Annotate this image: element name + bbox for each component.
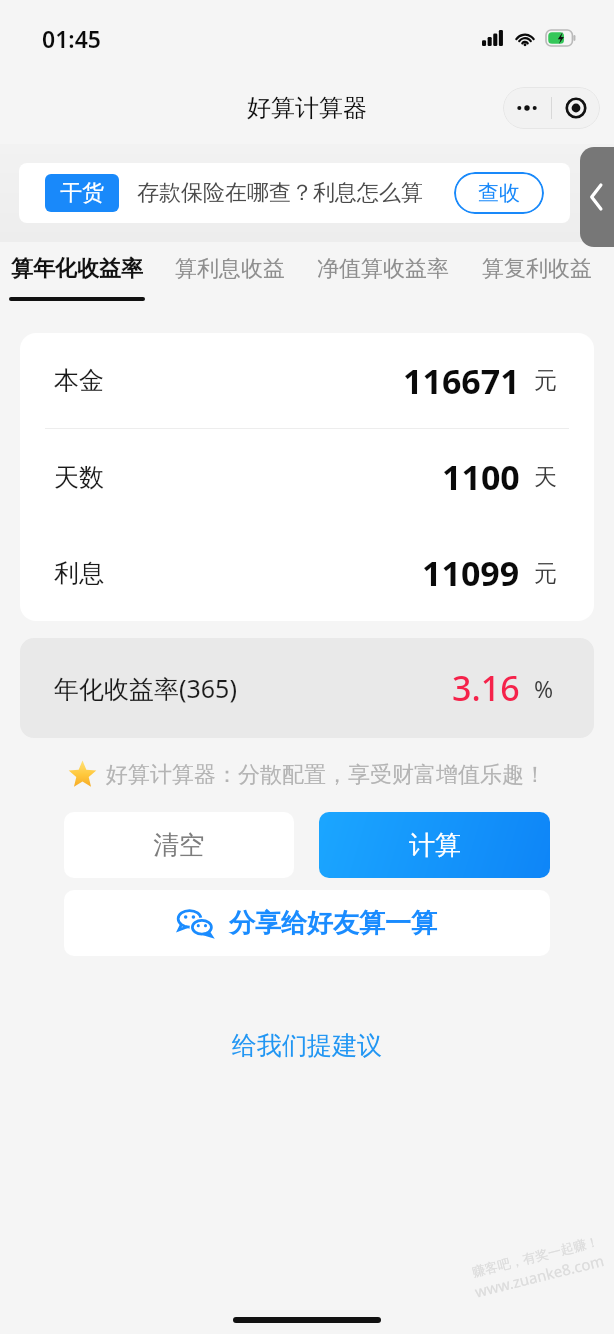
staticText: 给我们提建议 <box>232 1030 382 1061</box>
staticText: 好算计算器：分散配置，享受财富增值乐趣！ <box>106 761 546 789</box>
staticText: 本金 <box>54 365 104 396</box>
staticText: % <box>534 673 554 704</box>
staticText: 元 <box>534 366 557 395</box>
button[interactable]: More <box>503 87 551 129</box>
button[interactable]: 利息 <box>20 525 594 621</box>
staticText: 天 <box>534 463 557 492</box>
button[interactable]: 分享给好友算一算 <box>64 890 550 956</box>
staticText: 赚客吧，有奖一起赚！ <box>470 1233 600 1280</box>
button[interactable]: 本金 <box>20 333 594 428</box>
staticText: 01:45 <box>42 23 101 54</box>
button[interactable]: 算复利收益 <box>460 242 614 317</box>
button[interactable]: 算利息收益 <box>153 242 306 317</box>
button[interactable]: 算年化收益率 <box>0 242 153 317</box>
staticText: 分享给好友算一算 <box>229 907 437 940</box>
staticText: 算复利收益 <box>482 255 592 283</box>
staticText: 净值算收益率 <box>317 255 449 283</box>
button[interactable]: 天数 <box>20 429 594 525</box>
staticText: 存款保险在哪查？利息怎么算 <box>137 179 454 207</box>
button[interactable]: 清空 <box>64 812 294 878</box>
staticText: 116671 <box>403 358 520 404</box>
staticText: 好算计算器 <box>247 93 367 123</box>
staticText: 查收 <box>478 180 520 206</box>
button[interactable]: 年化收益率(365) <box>20 638 594 738</box>
button[interactable]: 计算 <box>319 812 550 878</box>
staticText: 元 <box>534 559 557 588</box>
staticText: 清空 <box>153 829 205 862</box>
button[interactable]: 查收 <box>454 172 544 214</box>
staticText: www.zuanke8.com <box>473 1250 607 1301</box>
staticText: 干货 <box>60 179 104 207</box>
staticText: 11099 <box>422 550 520 596</box>
button[interactable]: Close <box>552 87 600 129</box>
button[interactable]: Open drawer <box>580 147 614 247</box>
staticText: 算利息收益 <box>175 255 285 283</box>
staticText: 3.16 <box>452 665 520 711</box>
staticText: 年化收益率(365) <box>54 671 237 705</box>
staticText: 天数 <box>54 462 104 493</box>
staticText: 计算 <box>409 829 461 862</box>
button[interactable]: 净值算收益率 <box>306 242 460 317</box>
button[interactable]: 干货 <box>19 163 570 223</box>
staticText: 利息 <box>54 558 104 589</box>
staticText: 算年化收益率 <box>11 255 143 283</box>
button[interactable]: 给我们提建议 <box>212 1022 402 1069</box>
staticText: 1100 <box>442 454 520 500</box>
